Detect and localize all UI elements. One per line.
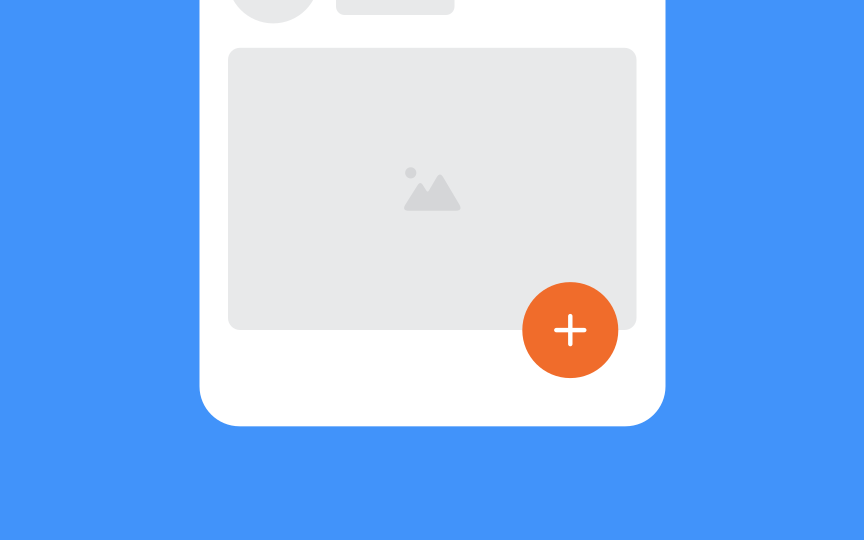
button[interactable]: Add — [522, 282, 618, 378]
button[interactable]: Author profile — [227, 0, 319, 23]
button[interactable]: Photo — [228, 48, 636, 330]
